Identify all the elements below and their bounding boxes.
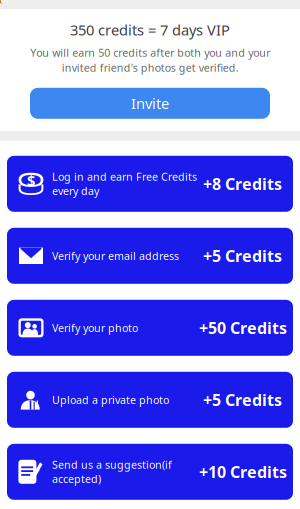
button[interactable]: Upload a private photo	[7, 372, 293, 428]
staticText: Send us a suggestion(if accepted)	[52, 458, 172, 486]
staticText: 350 credits = 7 days VIP	[70, 20, 230, 39]
button[interactable]: $	[7, 156, 293, 212]
staticText: Upload a private photo	[52, 393, 169, 407]
staticText: +50 Credits	[199, 317, 287, 338]
staticText: $	[27, 170, 35, 190]
button[interactable]: Verify your photo	[7, 300, 293, 356]
staticText: Verify your email address	[52, 249, 179, 263]
staticText: Invite	[131, 94, 169, 113]
staticText: You will earn 50 credits after both you …	[30, 45, 270, 75]
staticText: +5 Credits	[203, 245, 282, 266]
button[interactable]: Send us a suggestion(if accepted)	[7, 444, 293, 500]
staticText: Verify your photo	[52, 321, 138, 335]
staticText: Log in and earn Free Credits every day	[52, 170, 197, 198]
button[interactable]: Verify your email address	[7, 228, 293, 284]
staticText: +10 Credits	[199, 461, 287, 482]
staticText: +5 Credits	[203, 389, 282, 410]
staticText: +8 Credits	[203, 173, 282, 194]
button[interactable]: Invite	[30, 88, 270, 119]
